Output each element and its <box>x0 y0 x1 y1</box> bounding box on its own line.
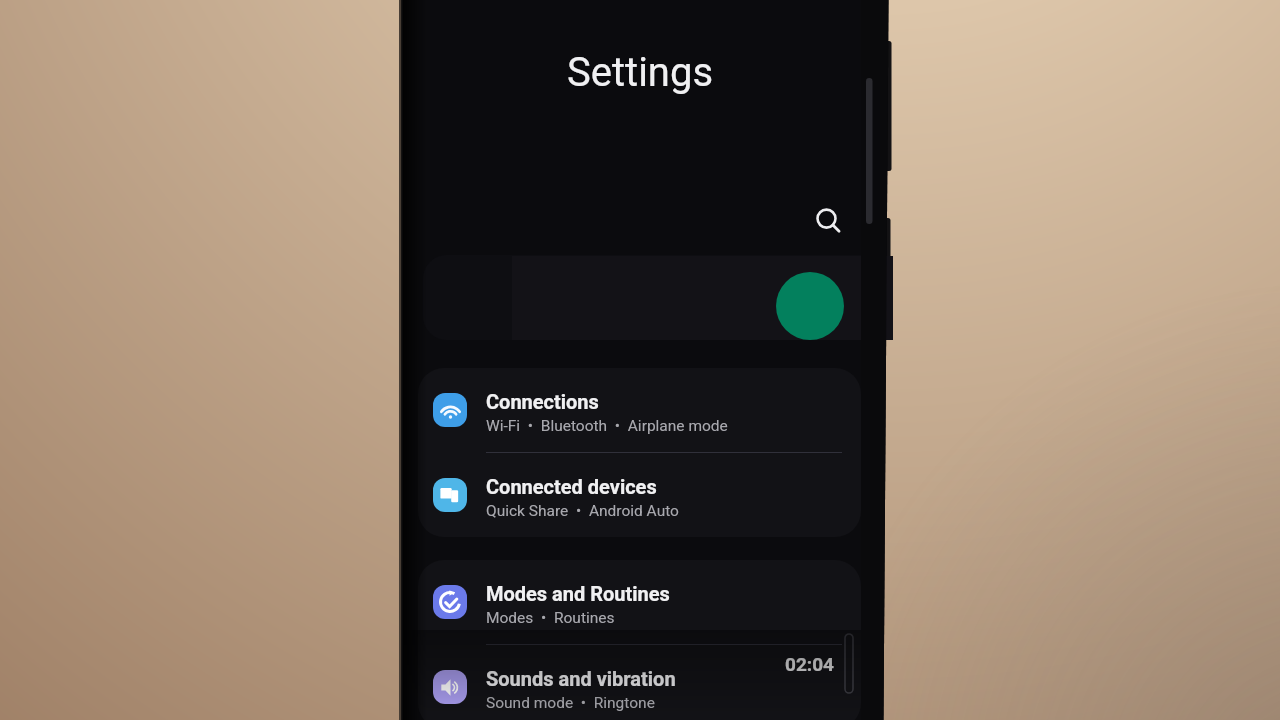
button[interactable]: Sounds and vibration <box>418 645 861 720</box>
button[interactable]: Search settings <box>423 255 881 340</box>
staticText: Sound mode • Ringtone <box>486 694 655 712</box>
button[interactable]: Connections <box>418 368 861 452</box>
button[interactable]: Profile <box>776 272 844 340</box>
staticText: 02:04 <box>785 653 834 675</box>
button[interactable]: Connected devices <box>418 453 861 537</box>
button[interactable]: Search <box>804 197 852 245</box>
staticText: Sounds and vibration <box>486 667 676 690</box>
button[interactable]: Samsung account <box>512 256 893 340</box>
staticText: Wi-Fi • Bluetooth • Airplane mode <box>486 417 728 435</box>
staticText: Quick Share • Android Auto <box>486 502 679 520</box>
button[interactable]: Modes and Routines <box>418 560 861 644</box>
staticText: Modes and Routines <box>486 582 670 605</box>
staticText: Connected devices <box>486 475 657 498</box>
staticText: Settings <box>567 49 714 95</box>
staticText: Connections <box>486 390 599 413</box>
staticText: Modes • Routines <box>486 609 615 627</box>
